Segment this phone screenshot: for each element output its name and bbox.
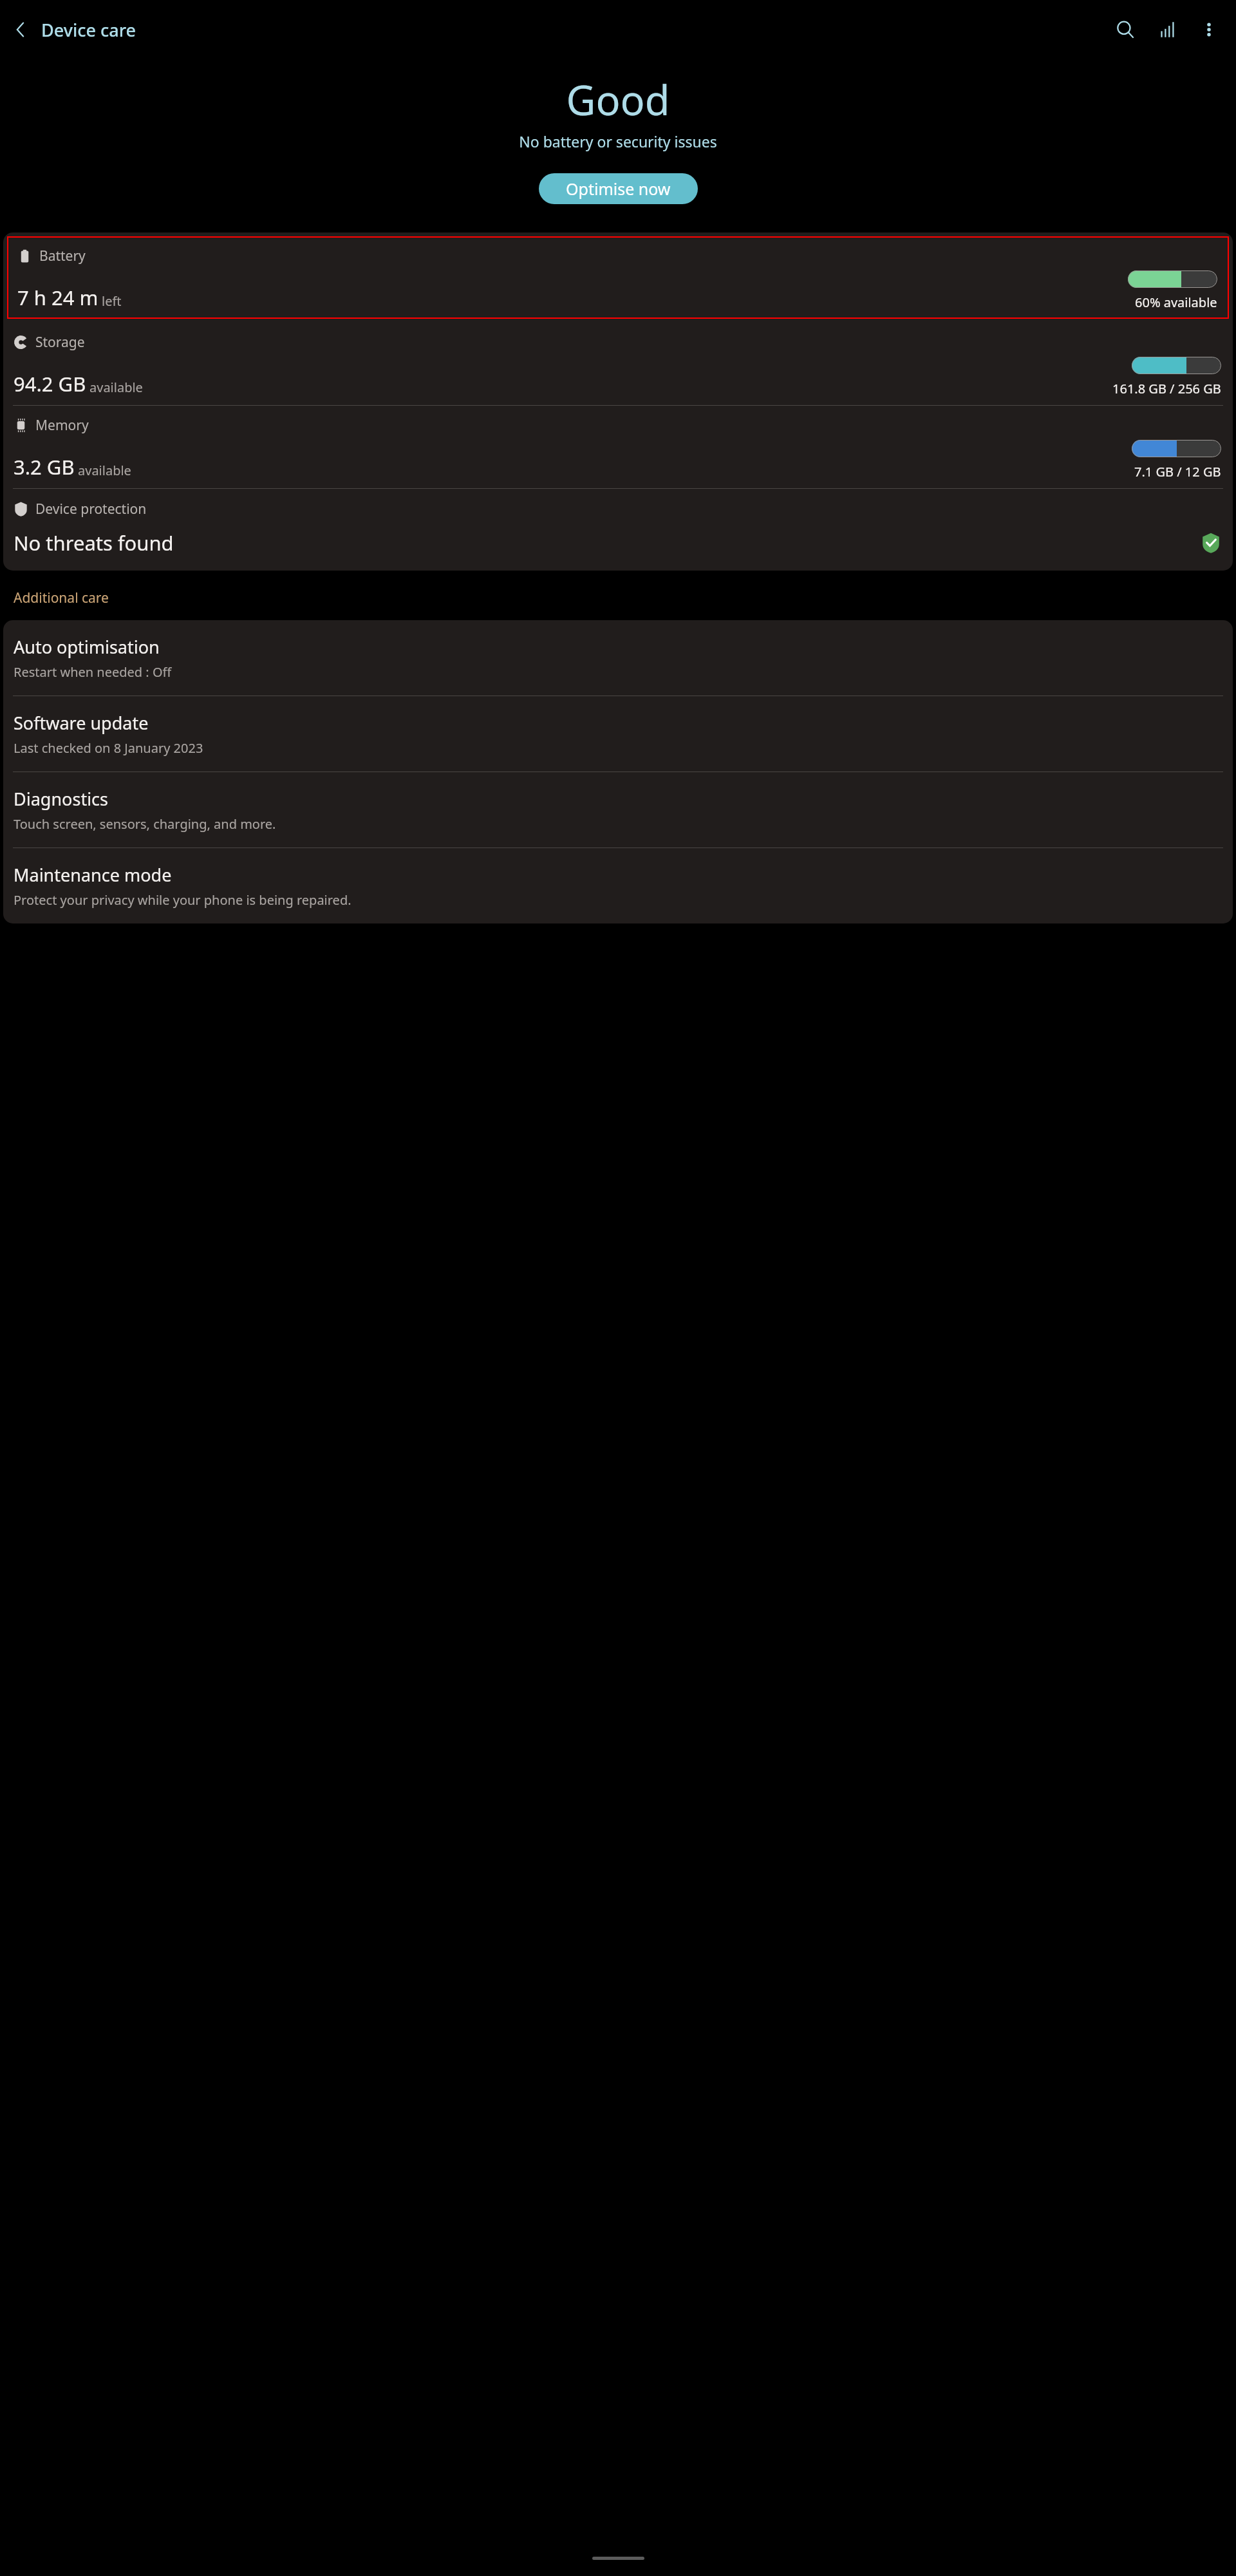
staticText: 94.2 GB: [14, 370, 86, 397]
staticText: No battery or security issues: [0, 131, 1236, 151]
button[interactable]: Auto optimisation: [3, 620, 1233, 696]
staticText: available: [89, 379, 143, 396]
staticText: Software update: [14, 711, 149, 735]
staticText: Restart when needed : Off: [14, 663, 172, 681]
staticText: 7 h 24 m: [17, 284, 98, 311]
staticText: Last checked on 8 January 2023: [14, 739, 203, 757]
staticText: Maintenance mode: [14, 863, 172, 887]
staticText: 7.1 GB / 12 GB: [1134, 463, 1221, 480]
staticText: 161.8 GB / 256 GB: [1112, 380, 1221, 397]
button[interactable]: Storage: [3, 323, 1233, 405]
button[interactable]: Battery: [7, 236, 1229, 319]
staticText: Protect your privacy while your phone is…: [14, 891, 351, 909]
button[interactable]: Diagnostics: [3, 772, 1233, 848]
staticText: Diagnostics: [14, 787, 108, 811]
staticText: Storage: [35, 333, 85, 352]
button[interactable]: Search: [1107, 12, 1143, 48]
button[interactable]: Back: [6, 15, 35, 44]
staticText: Memory: [35, 416, 89, 435]
staticText: Good: [0, 72, 1236, 128]
staticText: Additional care: [14, 589, 109, 607]
button[interactable]: Device protection: [3, 489, 1233, 571]
staticText: Touch screen, sensors, charging, and mor…: [14, 815, 276, 833]
staticText: Device care: [41, 18, 136, 42]
button[interactable]: Memory: [3, 406, 1233, 488]
staticText: 3.2 GB: [14, 453, 75, 480]
staticText: Battery: [39, 247, 86, 265]
button[interactable]: More options: [1191, 12, 1227, 48]
button[interactable]: Maintenance mode: [3, 848, 1233, 923]
button[interactable]: Software update: [3, 696, 1233, 772]
staticText: No threats found: [14, 529, 174, 556]
staticText: 60% available: [1135, 294, 1217, 311]
button[interactable]: Usage statistics: [1150, 12, 1186, 48]
staticText: left: [102, 292, 122, 310]
staticText: available: [78, 462, 131, 479]
staticText: Optimise now: [566, 178, 671, 200]
staticText: Device protection: [35, 500, 147, 518]
staticText: Auto optimisation: [14, 635, 160, 659]
button[interactable]: Optimise now: [539, 173, 698, 204]
